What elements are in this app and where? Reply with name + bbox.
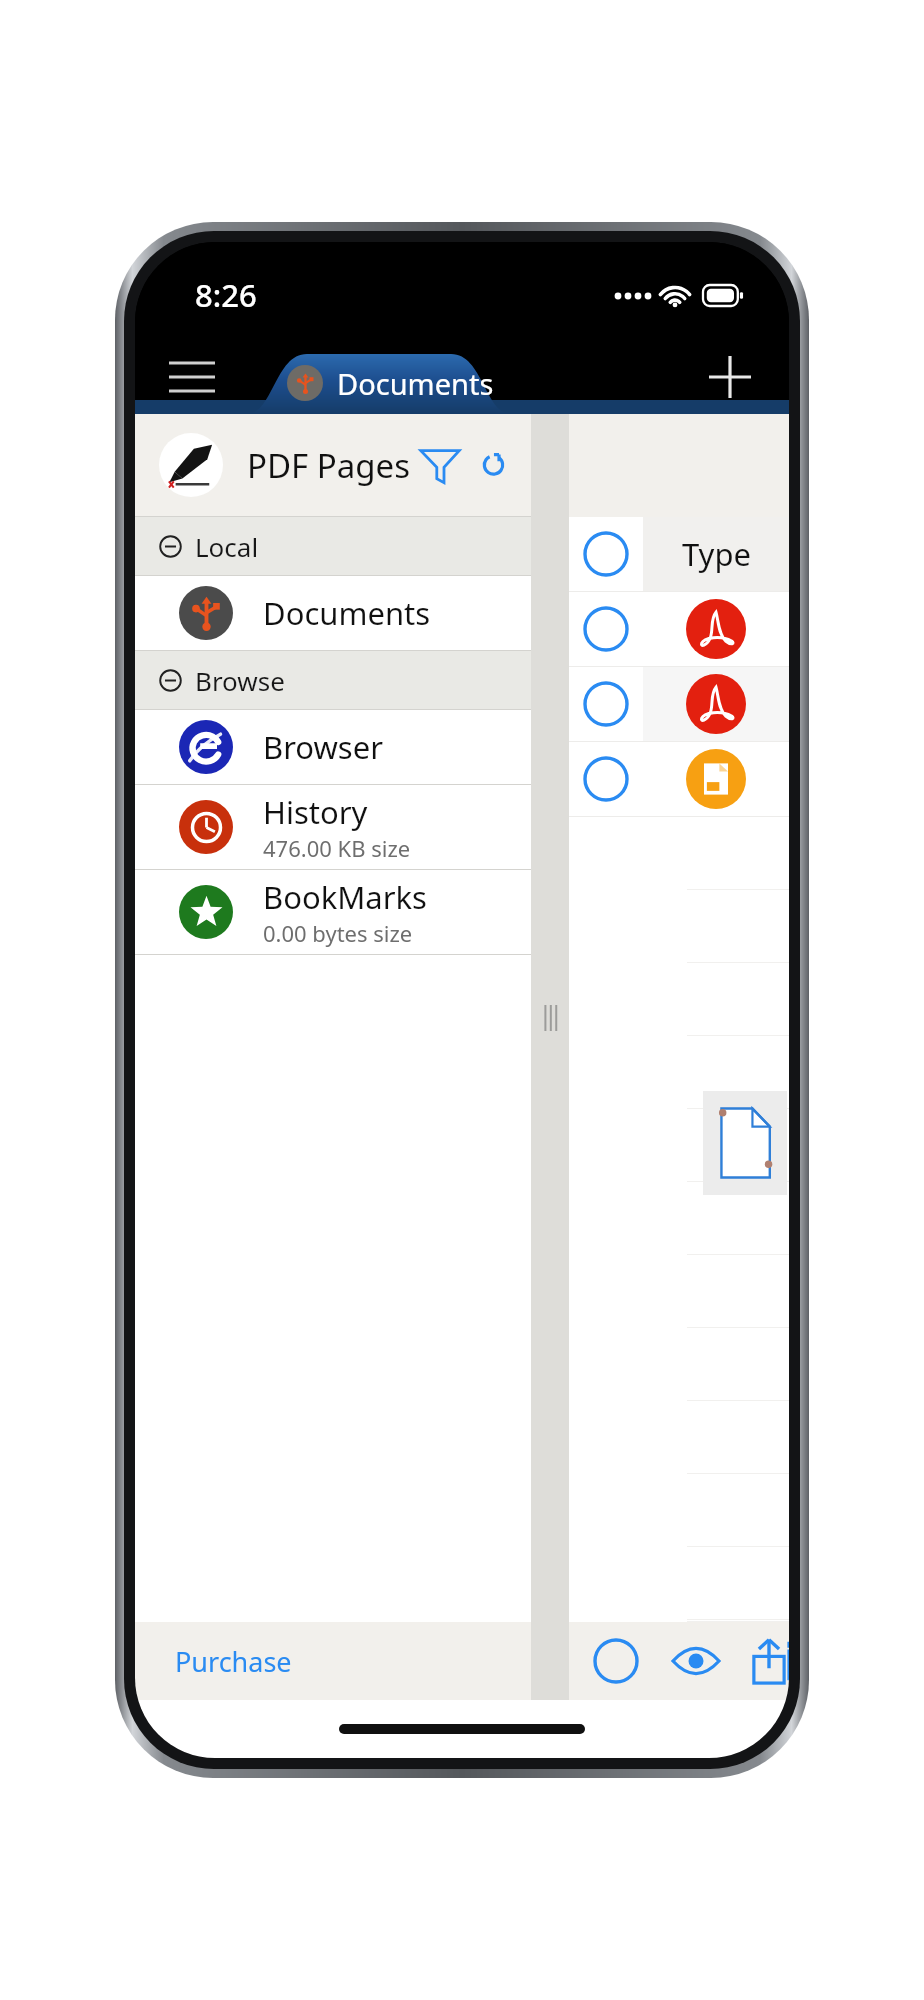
- button[interactable]: Add: [693, 340, 767, 414]
- staticText: Local: [195, 529, 259, 564]
- staticText: 0.00 bytes size: [263, 918, 413, 948]
- staticText: History: [263, 791, 368, 833]
- button[interactable]: Menu: [153, 346, 231, 408]
- staticText: Type: [682, 533, 751, 575]
- button[interactable]: BookMarks: [135, 870, 531, 955]
- staticText: Documents: [263, 592, 431, 634]
- button[interactable]: Browser: [135, 710, 531, 785]
- button[interactable]: [569, 742, 789, 816]
- button[interactable]: [569, 592, 789, 666]
- button[interactable]: Select: [589, 1634, 643, 1688]
- button[interactable]: Share: [749, 1634, 789, 1688]
- button[interactable]: Refresh: [480, 435, 507, 495]
- staticText: Browse: [195, 663, 285, 698]
- staticText: PDF Pages: [247, 443, 410, 488]
- button[interactable]: Filter: [410, 435, 470, 495]
- staticText: Documents: [337, 364, 494, 403]
- button[interactable]: History: [135, 785, 531, 870]
- button[interactable]: Purchase: [175, 1622, 531, 1700]
- staticText: BookMarks: [263, 876, 427, 918]
- button[interactable]: [569, 667, 789, 741]
- button[interactable]: Preview: [669, 1634, 723, 1688]
- staticText: Browser: [263, 726, 383, 768]
- button[interactable]: Documents: [233, 346, 525, 414]
- button[interactable]: Documents: [135, 576, 531, 651]
- staticText: 476.00 KB size: [263, 833, 411, 863]
- staticText: Purchase: [175, 1643, 292, 1680]
- button[interactable]: Type: [569, 517, 789, 591]
- staticText: 8:26: [195, 274, 257, 316]
